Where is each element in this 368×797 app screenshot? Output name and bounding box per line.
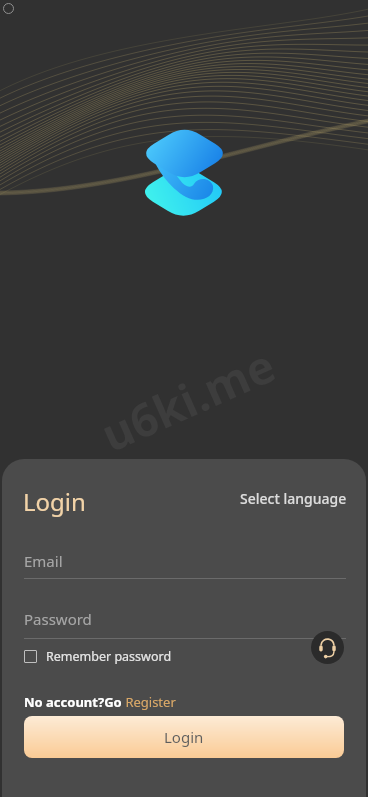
staticText: Email [24,551,63,571]
button[interactable]: Remember password [24,648,172,665]
button[interactable]: Select language [240,489,347,508]
staticText: No account?Go [24,693,122,711]
staticText: Select language [240,489,347,508]
button[interactable]: Login [24,716,344,758]
button[interactable]: Customer support [311,631,344,664]
staticText: Password [24,609,92,629]
button[interactable]: Register [122,693,176,711]
staticText: Login [164,727,204,747]
staticText: Register [122,693,176,711]
staticText: u6ki.me [91,333,285,466]
staticText: Login [23,485,86,518]
staticText: Remember password [46,648,172,665]
